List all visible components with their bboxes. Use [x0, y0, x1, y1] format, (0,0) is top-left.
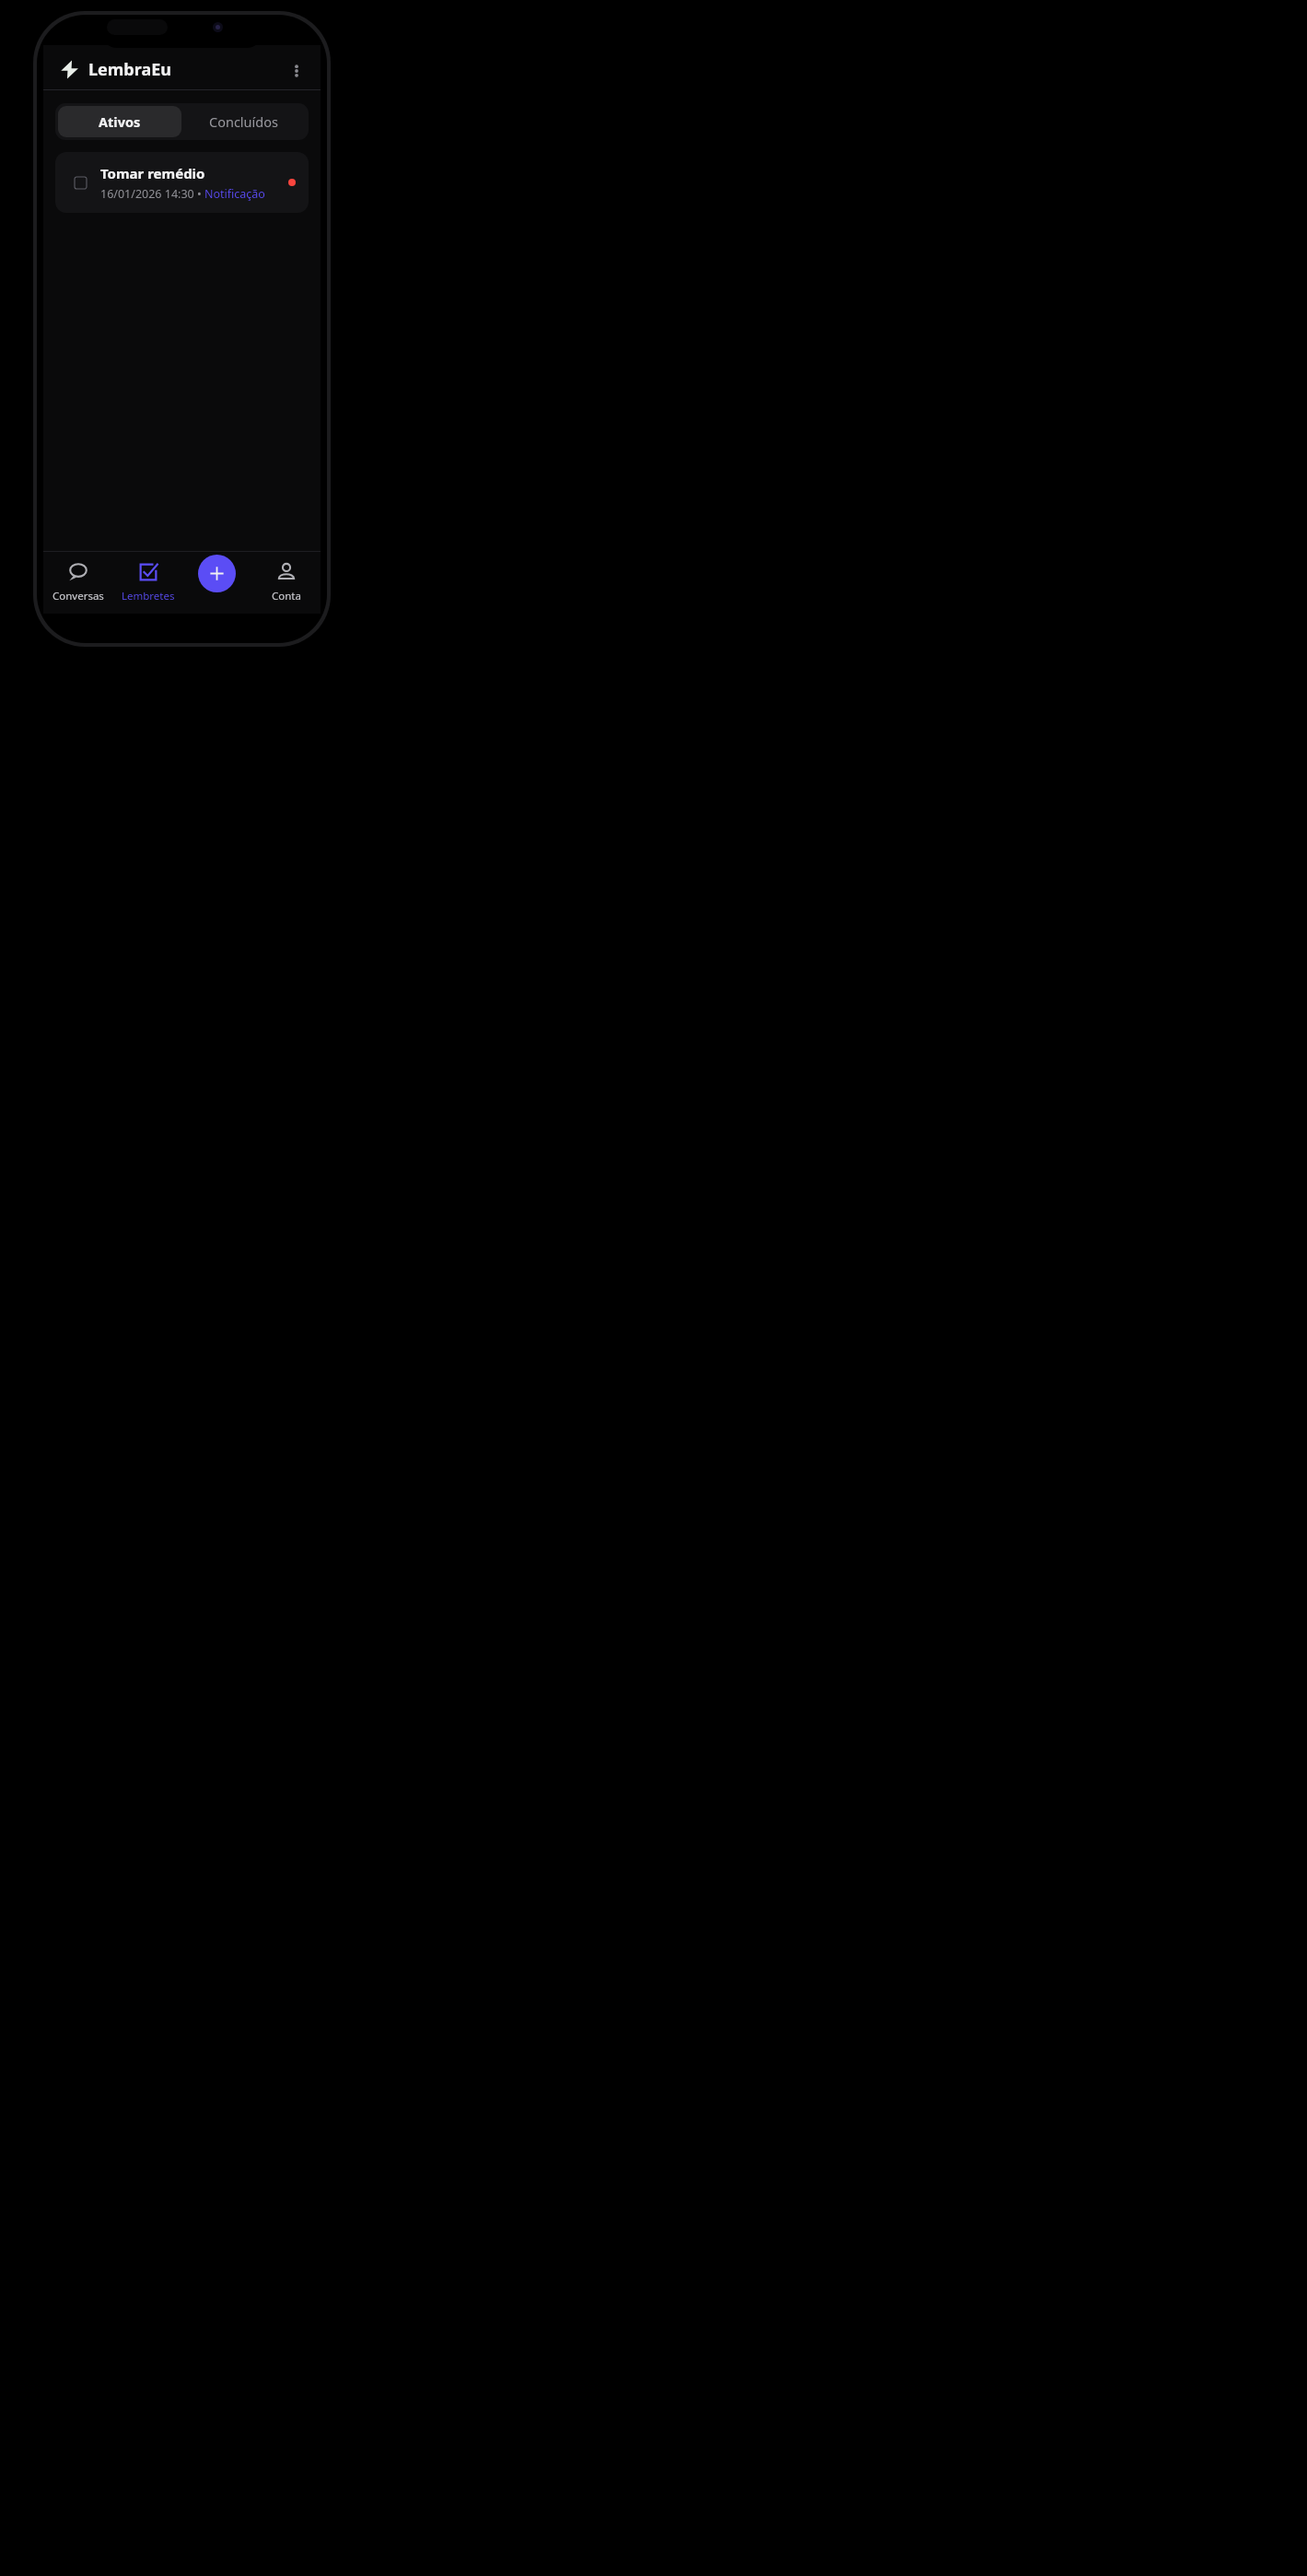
staticText: LembraEu	[88, 58, 171, 81]
button[interactable]: More options	[280, 54, 313, 88]
staticText: Conta	[272, 589, 301, 603]
staticText: Ativos	[99, 112, 141, 131]
button[interactable]: Adicionar lembrete	[198, 555, 236, 592]
staticText: 16/01/2026 14:30 • Notificação	[100, 186, 265, 202]
staticText: Conversas	[53, 589, 104, 603]
button[interactable]: Ativos	[58, 106, 181, 137]
staticText: Tomar remédio	[100, 164, 205, 182]
button[interactable]: Concluídos	[181, 106, 306, 137]
staticText: Concluídos	[209, 112, 278, 131]
staticText: Lembretes	[122, 589, 175, 603]
button[interactable]: Marcar como concluído	[55, 152, 309, 213]
button[interactable]: Conta	[251, 552, 321, 614]
button[interactable]: Conversas	[43, 552, 113, 614]
button[interactable]: Marcar como concluído	[68, 170, 92, 194]
button[interactable]: Lembretes	[113, 552, 182, 614]
